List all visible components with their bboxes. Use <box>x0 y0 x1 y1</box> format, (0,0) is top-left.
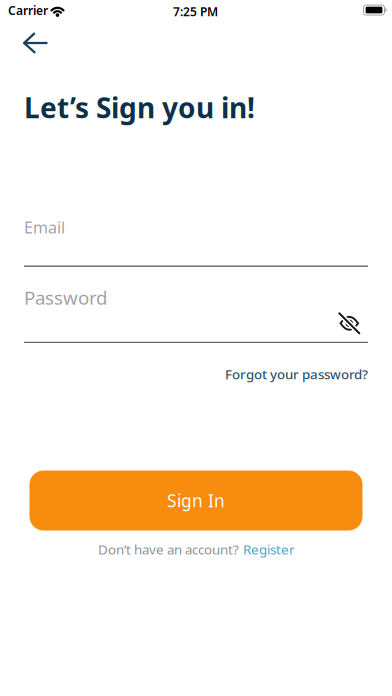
button[interactable]: Forgot your password? <box>225 365 368 383</box>
staticText: Forgot your password? <box>225 365 368 383</box>
staticText: Sign In <box>167 489 225 512</box>
staticText: Register <box>243 540 295 558</box>
button[interactable] <box>23 33 46 52</box>
staticText: Carrier <box>8 2 48 18</box>
staticText: Email <box>24 217 65 238</box>
staticText: Don’t have an account? <box>98 540 239 558</box>
button[interactable] <box>338 312 360 334</box>
button[interactable]: Sign In <box>29 470 362 530</box>
staticText: Password <box>24 285 107 310</box>
staticText: Let’s Sign you in! <box>24 89 255 126</box>
staticText: 7:25 PM <box>173 4 218 20</box>
button[interactable]: Register <box>243 540 295 558</box>
